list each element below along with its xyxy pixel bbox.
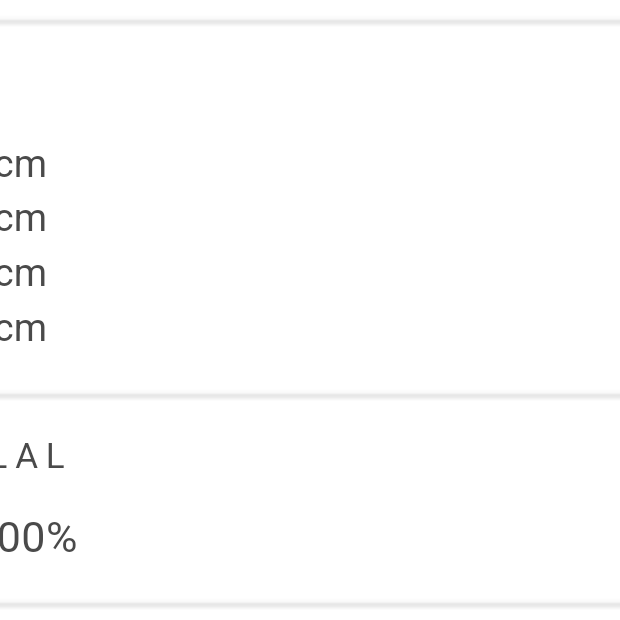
staticText: 63 cm xyxy=(0,251,47,296)
staticText: 100% xyxy=(0,512,78,562)
staticText: 54 cm xyxy=(0,196,47,241)
staticText: S M L A L xyxy=(0,436,64,477)
button[interactable]: Body length xyxy=(0,142,47,197)
button[interactable]: Available sizes xyxy=(0,436,64,514)
button[interactable]: Shoulder width xyxy=(0,306,47,361)
button[interactable]: Sleeve length xyxy=(0,251,47,306)
staticText: 46 cm xyxy=(0,306,47,351)
button[interactable]: Cotton xyxy=(0,512,78,592)
staticText: 71 cm xyxy=(0,142,47,187)
button[interactable]: Chest width xyxy=(0,196,47,251)
